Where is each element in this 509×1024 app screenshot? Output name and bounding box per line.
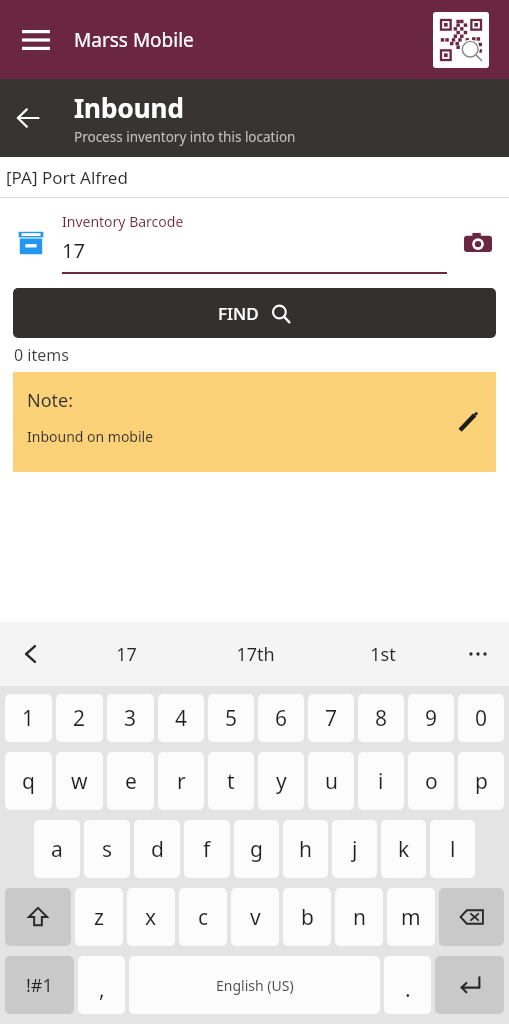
- staticText: x: [145, 903, 157, 932]
- button[interactable]: ,: [78, 956, 125, 1014]
- button[interactable]: FIND: [13, 288, 496, 338]
- staticText: 9: [425, 704, 438, 733]
- button[interactable]: 17: [62, 622, 191, 686]
- staticText: Process inventory into this location: [74, 128, 296, 146]
- button[interactable]: f: [184, 820, 230, 878]
- button[interactable]: a: [34, 820, 80, 878]
- staticText: 3: [124, 704, 137, 733]
- button[interactable]: y: [258, 752, 304, 810]
- staticText: i: [378, 767, 384, 796]
- button[interactable]: n: [335, 888, 383, 946]
- button[interactable]: p: [458, 752, 504, 810]
- staticText: Inbound: [74, 90, 184, 125]
- button[interactable]: Note:: [13, 372, 496, 472]
- staticText: q: [22, 767, 35, 796]
- button[interactable]: 6: [258, 694, 304, 742]
- button[interactable]: x: [127, 888, 175, 946]
- button[interactable]: g: [234, 820, 279, 878]
- button[interactable]: k: [381, 820, 426, 878]
- staticText: y: [276, 767, 287, 796]
- button[interactable]: m: [387, 888, 435, 946]
- button[interactable]: Edit note: [446, 400, 490, 444]
- staticText: r: [177, 767, 186, 796]
- button[interactable]: .: [384, 956, 431, 1014]
- button[interactable]: v: [231, 888, 279, 946]
- button[interactable]: 8: [358, 694, 404, 742]
- button[interactable]: Inventory: [0, 198, 62, 288]
- staticText: Note:: [27, 388, 74, 413]
- button[interactable]: 1st: [319, 622, 447, 686]
- staticText: t: [227, 767, 235, 796]
- button[interactable]: s: [84, 820, 130, 878]
- button[interactable]: Backspace: [439, 888, 504, 946]
- button[interactable]: 1: [5, 694, 52, 742]
- staticText: 8: [375, 704, 388, 733]
- staticText: .: [405, 975, 411, 1004]
- button[interactable]: 2: [56, 694, 103, 742]
- staticText: 6: [275, 704, 288, 733]
- button[interactable]: l: [430, 820, 475, 878]
- staticText: 4: [175, 704, 188, 733]
- button[interactable]: h: [283, 820, 328, 878]
- button[interactable]: q: [5, 752, 52, 810]
- button[interactable]: 0: [458, 694, 504, 742]
- button[interactable]: Scan with camera: [447, 198, 509, 288]
- button[interactable]: Back: [4, 94, 52, 142]
- staticText: Inventory Barcode: [62, 212, 184, 231]
- button[interactable]: e: [107, 752, 154, 810]
- staticText: 7: [325, 704, 338, 733]
- staticText: 17: [62, 237, 85, 264]
- button[interactable]: English (US): [129, 956, 380, 1014]
- button[interactable]: b: [283, 888, 331, 946]
- button[interactable]: More options: [447, 622, 509, 686]
- staticText: 17th: [236, 642, 275, 667]
- button[interactable]: d: [134, 820, 180, 878]
- staticText: h: [299, 835, 312, 864]
- staticText: n: [353, 903, 366, 932]
- staticText: [PA] Port Alfred: [6, 166, 128, 189]
- staticText: 1: [22, 704, 35, 733]
- button[interactable]: u: [308, 752, 354, 810]
- button[interactable]: z: [75, 888, 123, 946]
- button[interactable]: Previous suggestions: [0, 622, 62, 686]
- button[interactable]: r: [158, 752, 204, 810]
- button[interactable]: j: [332, 820, 377, 878]
- staticText: Marss Mobile: [74, 27, 194, 53]
- button[interactable]: i: [358, 752, 404, 810]
- staticText: d: [151, 835, 164, 864]
- staticText: k: [398, 835, 410, 864]
- staticText: l: [450, 835, 456, 864]
- button[interactable]: 7: [308, 694, 354, 742]
- staticText: f: [203, 835, 211, 864]
- staticText: g: [250, 835, 263, 864]
- button[interactable]: w: [56, 752, 103, 810]
- staticText: e: [125, 767, 137, 796]
- button[interactable]: Shift: [5, 888, 71, 946]
- staticText: o: [425, 767, 438, 796]
- staticText: s: [102, 835, 113, 864]
- button[interactable]: !#1: [5, 956, 74, 1014]
- staticText: 17: [116, 642, 137, 667]
- staticText: b: [301, 903, 314, 932]
- staticText: !#1: [26, 973, 53, 998]
- staticText: u: [325, 767, 338, 796]
- staticText: z: [94, 903, 104, 932]
- button[interactable]: Open navigation menu: [10, 14, 62, 66]
- button[interactable]: 5: [208, 694, 254, 742]
- button[interactable]: 9: [408, 694, 454, 742]
- button[interactable]: 17th: [191, 622, 319, 686]
- button[interactable]: c: [179, 888, 227, 946]
- staticText: ,: [99, 975, 105, 1004]
- button[interactable]: Scan QR code: [431, 10, 491, 70]
- staticText: p: [475, 767, 488, 796]
- button[interactable]: 4: [158, 694, 204, 742]
- staticText: 5: [225, 704, 238, 733]
- staticText: English (US): [216, 976, 294, 995]
- button[interactable]: 3: [107, 694, 154, 742]
- button[interactable]: o: [408, 752, 454, 810]
- button[interactable]: Enter: [435, 956, 504, 1014]
- button[interactable]: t: [208, 752, 254, 810]
- staticText: FIND: [218, 302, 259, 325]
- staticText: 1st: [370, 642, 396, 667]
- staticText: Inbound on mobile: [27, 427, 154, 446]
